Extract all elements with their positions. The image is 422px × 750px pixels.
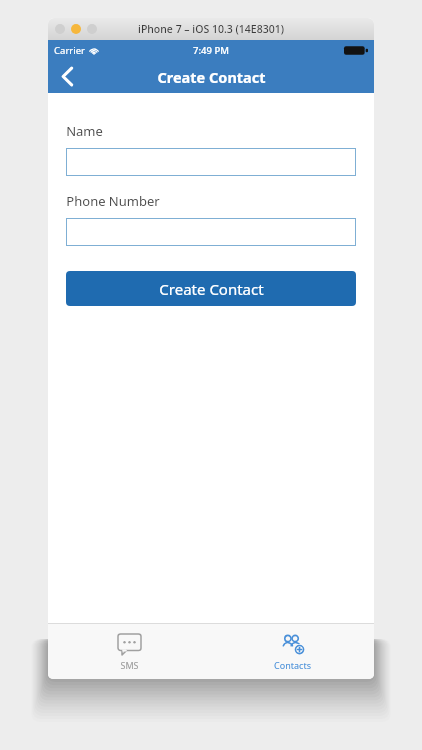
button[interactable]: Close [55,24,65,34]
staticText: SMS [120,659,139,671]
staticText: Contacts [274,659,311,671]
button[interactable]: Zoom [87,24,97,34]
staticText: Create Contact [159,279,264,299]
staticText: Carrier [54,44,85,57]
staticText: Create Contact [157,67,266,87]
button[interactable]: Create Contact [66,271,356,306]
staticText: Phone Number [66,192,160,210]
button[interactable]: SMS [48,624,211,679]
staticText: Name [66,122,103,140]
staticText: 7:49 PM [193,44,229,57]
button[interactable]: Back [48,60,86,93]
button[interactable] [66,218,356,246]
button[interactable]: Minimize [71,24,81,34]
button[interactable]: Contacts [211,624,374,679]
button[interactable] [66,148,356,176]
staticText: iPhone 7 – iOS 10.3 (14E8301) [138,22,284,36]
